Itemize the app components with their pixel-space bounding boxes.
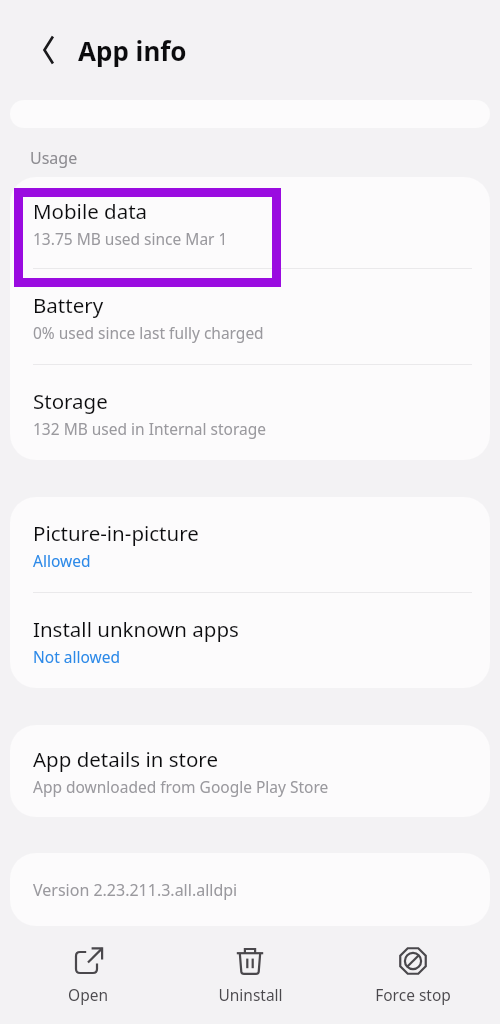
staticText: Storage — [33, 387, 108, 415]
staticText: 132 MB used in Internal storage — [33, 418, 267, 439]
staticText: Not allowed — [33, 646, 121, 667]
staticText: 13.75 MB used since Mar 1 — [33, 228, 228, 249]
staticText: Open — [68, 984, 108, 1005]
staticText: Usage — [30, 147, 78, 169]
staticText: App downloaded from Google Play Store — [33, 776, 329, 797]
staticText: App details in store — [33, 745, 218, 773]
button[interactable]: Open — [13, 940, 163, 1011]
button[interactable]: Battery — [10, 269, 490, 364]
staticText: Battery — [33, 291, 104, 319]
staticText: Uninstall — [218, 984, 283, 1005]
staticText: Allowed — [33, 550, 91, 571]
staticText: Picture-in-picture — [33, 519, 199, 547]
staticText: App info — [78, 33, 187, 68]
button[interactable]: Version 2.23.211.3.all.alldpi — [10, 853, 490, 926]
staticText: Install unknown apps — [33, 615, 239, 643]
button[interactable]: Picture-in-picture — [10, 497, 490, 592]
staticText: Force stop — [375, 984, 451, 1005]
button[interactable]: Install unknown apps — [10, 593, 490, 688]
button[interactable]: Mobile data — [10, 177, 490, 268]
button[interactable]: Back — [22, 27, 68, 73]
button[interactable]: Force stop — [338, 940, 488, 1011]
staticText: Mobile data — [33, 197, 148, 225]
button[interactable]: App details in store — [10, 725, 490, 817]
staticText: 0% used since last fully charged — [33, 322, 264, 343]
staticText: Version 2.23.211.3.all.alldpi — [33, 879, 238, 901]
button[interactable]: Storage — [10, 365, 490, 460]
button[interactable]: Uninstall — [175, 940, 325, 1011]
